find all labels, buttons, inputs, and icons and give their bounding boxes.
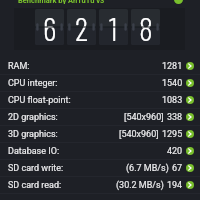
staticText: 1281 [162,61,183,72]
other: Details for CPU float-point: [186,96,194,104]
staticText: 420 [167,146,183,157]
staticText: (6.7 MB/s) [126,163,169,174]
staticText: 2D graphics: [8,112,58,123]
other: Details for 3D graphics: [186,130,194,138]
staticText: 1540 [162,78,183,89]
button[interactable]: SD card read: [0,177,200,194]
staticText: RAM: [8,61,30,72]
button[interactable]: 2D graphics: [0,109,200,126]
staticText: 2 [75,9,88,44]
button[interactable]: Database IO: [0,143,200,160]
staticText: 6 [43,9,57,44]
other: Info [174,0,183,4]
staticText: Database IO: [8,146,60,157]
button[interactable]: CPU integer: [0,75,200,92]
staticText: SD card read: [8,180,62,191]
staticText: Benchmark by AnTuTu v3 [18,0,105,4]
other: Details for SD card read: [186,181,194,189]
staticText: 338 [167,112,183,123]
staticText: 1083 [162,95,183,106]
button[interactable]: SD card write: [0,160,200,177]
staticText: 194 [167,180,183,191]
staticText: 1 [109,9,118,44]
staticText: CPU integer: [8,78,58,89]
button[interactable]: 3D graphics: [0,126,200,143]
button[interactable]: RAM: [0,58,200,75]
other: Details for CPU integer: [186,79,194,87]
staticText: 3D graphics: [8,129,58,140]
staticText: 8 [139,9,153,44]
other: Details for RAM: [186,62,194,70]
other: Details for Database IO: [186,147,194,155]
staticText: SD card write: [8,163,64,174]
other: Details for 2D graphics: [186,113,194,121]
staticText: 67 [172,163,183,174]
other: Details for SD card write: [186,164,194,172]
staticText: 1295 [162,129,183,140]
staticText: (30.2 MB/s) [116,180,164,191]
staticText: CPU float-point: [8,95,71,106]
staticText: [540x960] [119,129,159,140]
button[interactable]: CPU float-point: [0,92,200,109]
staticText: [540x960] [124,112,164,123]
